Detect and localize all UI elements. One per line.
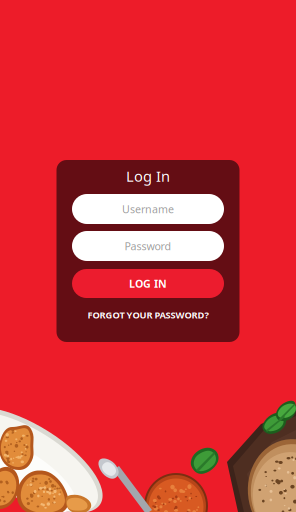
- staticText: LOG IN: [129, 276, 167, 291]
- staticText: Password: [124, 239, 171, 253]
- button[interactable]: LOG IN: [72, 269, 224, 298]
- button[interactable]: Password: [72, 231, 224, 261]
- staticText: FORGOT YOUR PASSWORD?: [87, 309, 208, 321]
- staticText: Username: [122, 202, 174, 216]
- button[interactable]: Username: [72, 194, 224, 224]
- staticText: Log In: [126, 166, 170, 186]
- button[interactable]: FORGOT YOUR PASSWORD?: [87, 307, 208, 323]
